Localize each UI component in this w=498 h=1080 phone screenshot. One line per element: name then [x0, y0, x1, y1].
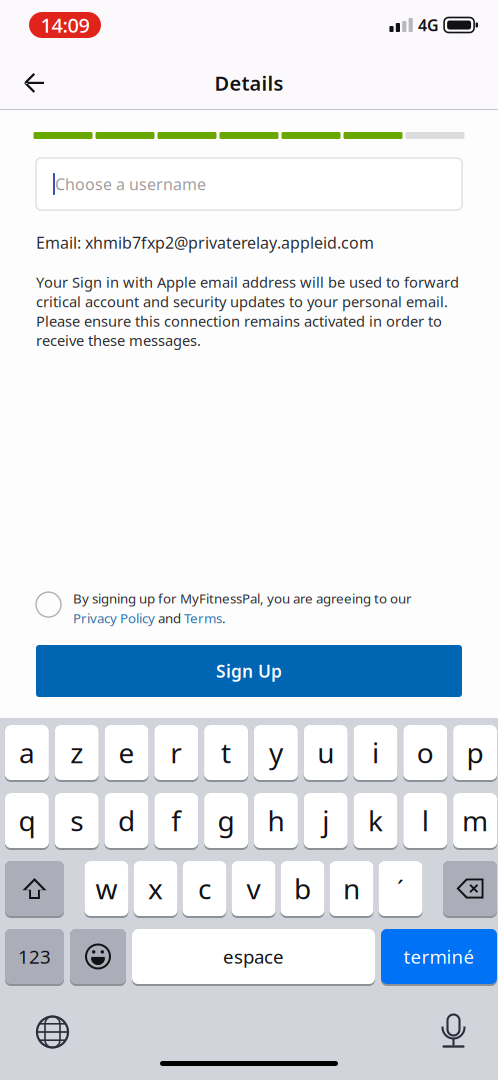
staticText: 4G — [418, 14, 439, 36]
button[interactable]: p — [453, 725, 497, 782]
button[interactable]: f — [154, 793, 198, 850]
staticText: Sign Up — [216, 659, 282, 682]
button[interactable]: Delete — [443, 861, 497, 918]
button[interactable]: Dictation — [421, 1009, 485, 1055]
button[interactable]: b — [280, 861, 324, 918]
button[interactable]: k — [353, 793, 397, 850]
staticText: Email: xhmib7fxp2@privaterelay.appleid.c… — [36, 232, 374, 253]
button[interactable]: terminé — [381, 929, 497, 986]
button[interactable]: a — [5, 725, 49, 782]
staticText: Details — [214, 70, 283, 96]
button[interactable]: m — [453, 793, 497, 850]
staticText: y — [269, 734, 283, 771]
button[interactable]: Switch keyboard — [20, 1009, 84, 1055]
staticText: 123 — [18, 944, 51, 969]
button[interactable]: Privacy Policy — [73, 609, 155, 627]
staticText: i — [372, 734, 379, 771]
staticText: z — [70, 734, 83, 771]
staticText: x — [148, 870, 163, 907]
staticText: Terms — [184, 609, 222, 627]
staticText: a — [19, 734, 35, 771]
staticText: k — [368, 802, 383, 839]
staticText: r — [170, 734, 182, 771]
staticText: h — [267, 802, 284, 839]
button[interactable]: u — [304, 725, 348, 782]
button[interactable]: i — [353, 725, 397, 782]
button[interactable]: w — [84, 861, 128, 918]
button[interactable]: 123 — [5, 929, 64, 986]
staticText: s — [70, 802, 83, 839]
staticText: Your Sign in with Apple email address wi… — [36, 272, 459, 350]
staticText: b — [294, 870, 311, 907]
button[interactable]: Terms — [184, 609, 222, 627]
button[interactable]: espace — [132, 929, 375, 986]
staticText: w — [95, 870, 117, 907]
staticText: f — [171, 802, 181, 839]
button[interactable]: d — [104, 793, 148, 850]
button[interactable]: s — [55, 793, 99, 850]
button[interactable]: h — [254, 793, 298, 850]
button[interactable]: x — [133, 861, 177, 918]
button[interactable]: Agree to terms — [36, 590, 73, 620]
staticText: g — [218, 802, 235, 839]
button[interactable]: l — [403, 793, 447, 850]
staticText: q — [18, 802, 35, 839]
button[interactable]: c — [182, 861, 226, 918]
staticText: t — [221, 734, 231, 771]
staticText: By signing up for MyFitnessPal, you are … — [73, 590, 412, 607]
button[interactable]: Sign Up — [36, 645, 462, 697]
staticText: Privacy Policy — [73, 609, 155, 627]
staticText: n — [343, 870, 360, 907]
button[interactable]: ´ — [378, 861, 422, 918]
button[interactable]: Emoji — [70, 929, 126, 986]
staticText: . — [222, 609, 226, 627]
staticText: d — [118, 802, 135, 839]
staticText: j — [322, 802, 329, 839]
button[interactable]: g — [204, 793, 248, 850]
staticText: l — [422, 802, 429, 839]
button[interactable]: Choose a username — [36, 158, 462, 210]
button[interactable]: n — [329, 861, 373, 918]
button[interactable]: r — [154, 725, 198, 782]
staticText: espace — [223, 944, 284, 969]
button[interactable]: z — [55, 725, 99, 782]
button[interactable]: t — [204, 725, 248, 782]
staticText: e — [118, 734, 134, 771]
staticText: and — [155, 609, 184, 627]
staticText: u — [317, 734, 334, 771]
button[interactable]: e — [104, 725, 148, 782]
button[interactable]: j — [304, 793, 348, 850]
staticText: v — [246, 870, 260, 907]
button[interactable]: Shift — [5, 861, 64, 918]
staticText: Choose a username — [55, 173, 206, 195]
button[interactable]: o — [403, 725, 447, 782]
staticText: o — [417, 734, 434, 771]
staticText: terminé — [403, 944, 474, 969]
staticText: 14:09 — [40, 12, 89, 38]
button[interactable]: v — [231, 861, 275, 918]
button[interactable]: Back — [0, 56, 68, 110]
staticText: c — [198, 870, 211, 907]
button[interactable]: q — [5, 793, 49, 850]
button[interactable]: y — [254, 725, 298, 782]
staticText: ´ — [397, 873, 404, 904]
staticText: m — [462, 802, 488, 839]
staticText: p — [467, 734, 484, 771]
